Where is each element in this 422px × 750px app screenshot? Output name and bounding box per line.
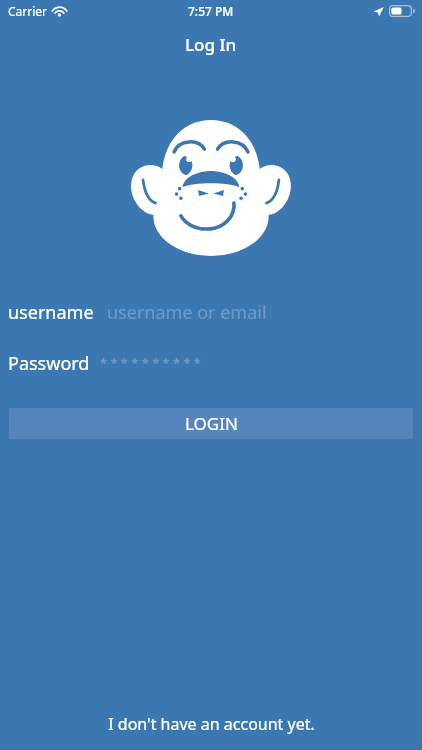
button[interactable]: LOGIN	[9, 408, 413, 439]
button[interactable]: username	[0, 296, 422, 328]
staticText: 7:57 PM	[188, 3, 234, 19]
staticText: Carrier	[8, 3, 48, 19]
staticText: LOGIN	[185, 412, 238, 435]
staticText: username or email	[107, 300, 267, 325]
staticText: username	[8, 300, 94, 325]
staticText: I don't have an account yet.	[108, 713, 315, 735]
button[interactable]: I don't have an account yet.	[0, 704, 422, 750]
staticText: * * * * * * * * * *	[100, 354, 201, 372]
button[interactable]: Password	[0, 347, 422, 379]
staticText: Log In	[185, 33, 237, 56]
staticText: Password	[8, 351, 90, 376]
